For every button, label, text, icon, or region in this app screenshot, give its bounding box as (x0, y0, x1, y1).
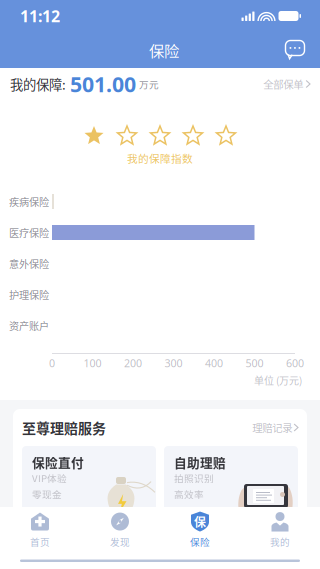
staticText: 单位 (万元) (254, 373, 302, 387)
staticText: 保险 (190, 534, 210, 548)
staticText: 自助理赔 (174, 453, 226, 471)
staticText: 高效率 (174, 487, 204, 501)
staticText: 全部保单 (263, 76, 303, 92)
staticText: 200 (124, 356, 142, 370)
staticText: 资产账户 (9, 318, 49, 333)
staticText: 保险 (149, 39, 179, 61)
staticText: 400 (205, 356, 223, 370)
button[interactable]: 我的 (240, 508, 320, 552)
staticText: 首页 (30, 534, 50, 548)
staticText: 300 (164, 356, 182, 370)
staticText: 我的保障指数 (127, 150, 193, 166)
staticText: 500 (245, 356, 263, 370)
staticText: 我的 (270, 534, 290, 548)
button[interactable]: 保险直付 (22, 446, 156, 512)
staticText: 我的保障: (10, 74, 66, 94)
staticText: 保险直付 (32, 453, 84, 471)
button[interactable]: 客服消息 (284, 39, 306, 60)
staticText: 疾病保险 (9, 194, 49, 209)
button[interactable]: 我的保障: (0, 68, 320, 100)
button[interactable]: 首页 (0, 508, 80, 552)
staticText: 至尊理赔服务 (22, 417, 106, 438)
staticText: 万元 (139, 77, 159, 91)
staticText: 零现金 (32, 487, 62, 501)
staticText: 501.00 (70, 69, 136, 99)
staticText: 拍照识别 (174, 471, 214, 485)
staticText: 0 (49, 356, 55, 370)
staticText: 100 (83, 356, 101, 370)
staticText: 理赔记录 (252, 420, 292, 435)
button[interactable]: 自助理赔 (164, 446, 298, 512)
staticText: VIP体验 (32, 471, 67, 485)
staticText: 11:12 (20, 5, 60, 27)
staticText: 保 (194, 513, 206, 530)
staticText: 护理保险 (9, 287, 49, 302)
staticText: 600 (286, 356, 304, 370)
button[interactable]: 发现 (80, 508, 160, 552)
staticText: 发现 (110, 534, 130, 548)
button[interactable]: 理赔记录 (252, 420, 298, 435)
staticText: 意外保险 (9, 256, 49, 271)
staticText: 医疗保险 (9, 225, 49, 240)
button[interactable]: 保 (160, 508, 240, 552)
